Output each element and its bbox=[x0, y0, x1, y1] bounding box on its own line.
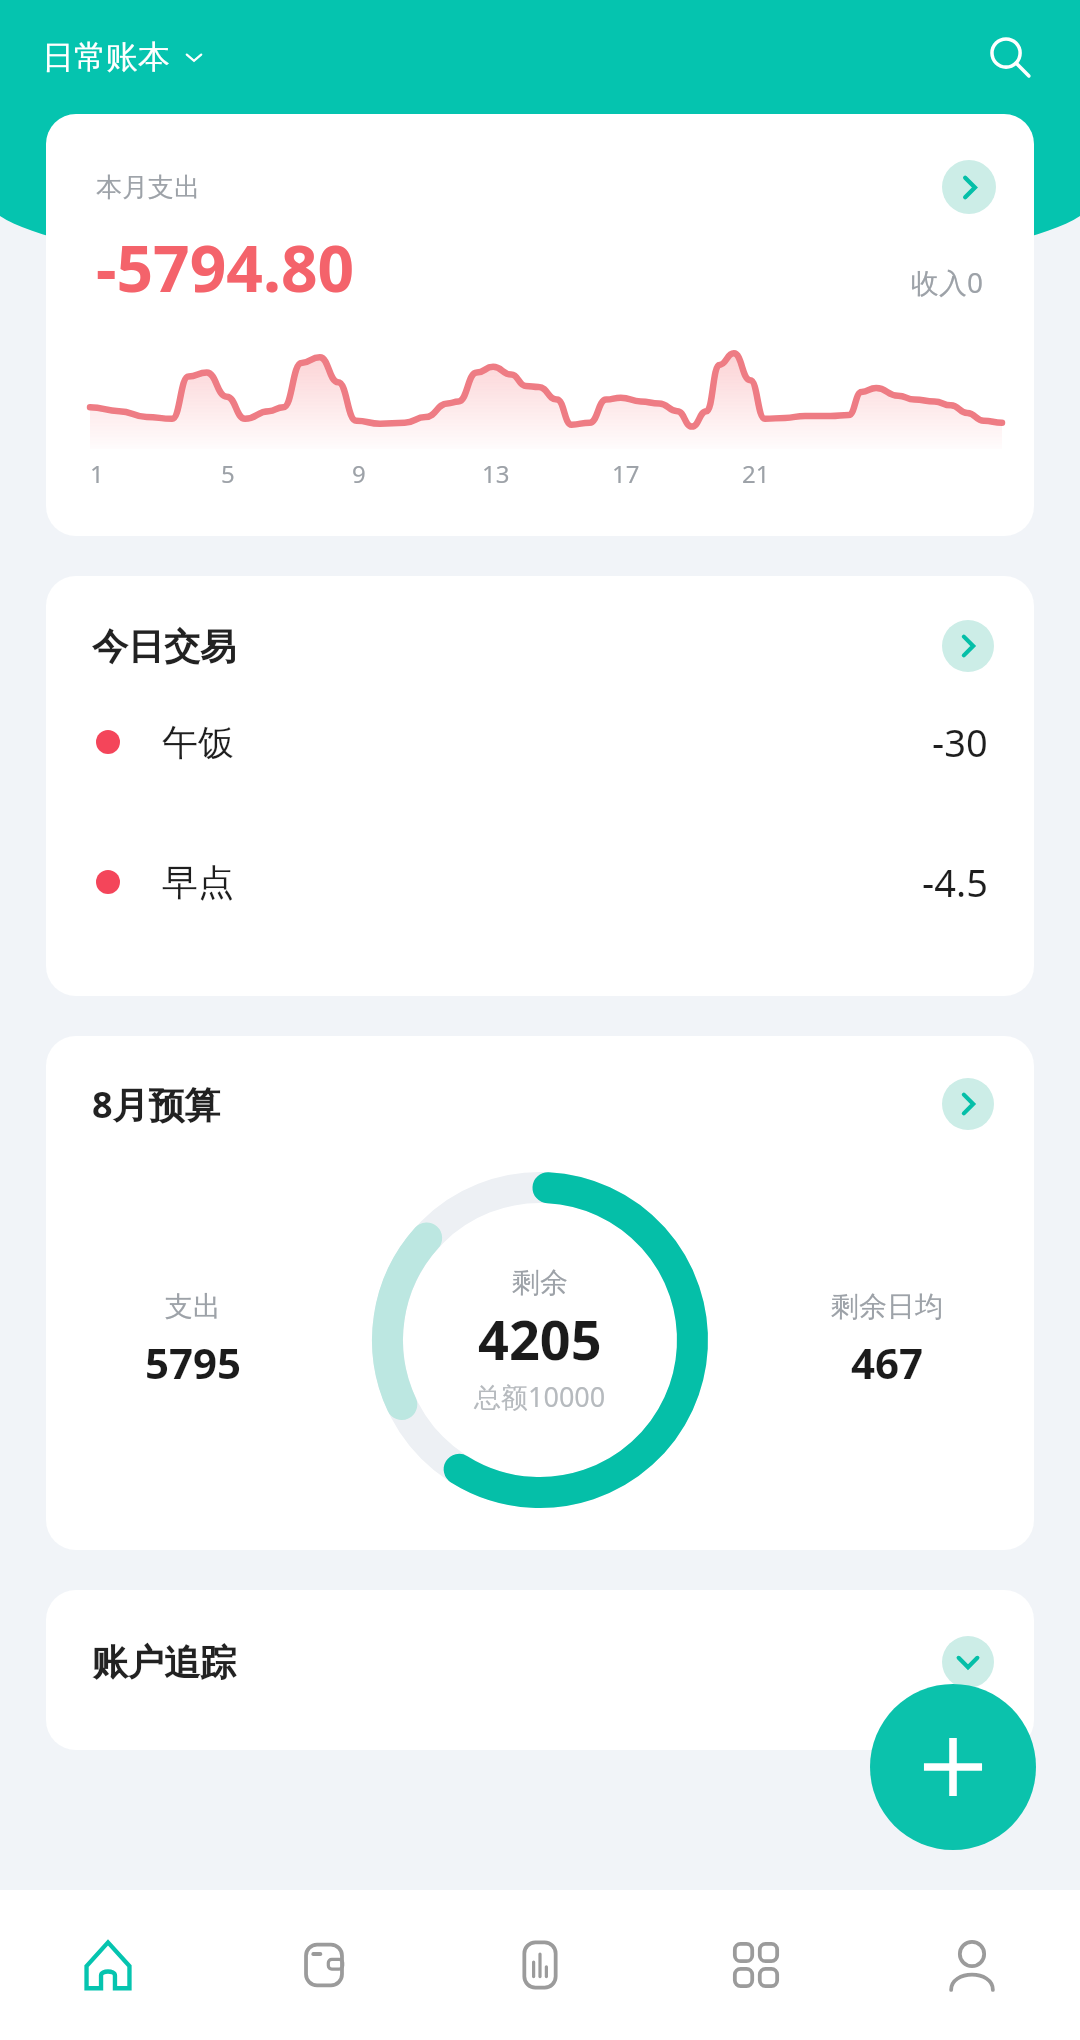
staticText: -5794.80 bbox=[96, 224, 355, 311]
staticText: 账户追踪 bbox=[92, 1640, 236, 1685]
button[interactable]: Statistics bbox=[432, 1890, 648, 2040]
button[interactable]: 日常账本 bbox=[34, 29, 214, 85]
button[interactable]: Profile bbox=[864, 1890, 1080, 2040]
staticText: 日常账本 bbox=[42, 37, 170, 77]
button[interactable]: Monthly expense detail bbox=[942, 160, 996, 214]
button[interactable]: 今日交易 bbox=[46, 576, 1034, 996]
staticText: 9 bbox=[352, 457, 366, 490]
staticText: -4.5 bbox=[922, 856, 988, 908]
staticText: 5 bbox=[221, 457, 235, 490]
staticText: 支出 bbox=[165, 1289, 221, 1324]
button[interactable]: Search bbox=[974, 21, 1046, 93]
button[interactable]: 早点 bbox=[46, 812, 1034, 952]
button[interactable]: 8月预算 bbox=[46, 1036, 1034, 1550]
staticText: 剩余 bbox=[512, 1265, 568, 1300]
button[interactable]: 账户追踪 bbox=[46, 1590, 1034, 1750]
button[interactable]: Account tracking bbox=[942, 1636, 994, 1688]
button[interactable]: 本月支出 bbox=[46, 114, 1034, 536]
staticText: -30 bbox=[932, 716, 988, 768]
button[interactable]: Categories bbox=[648, 1890, 864, 2040]
staticText: 收入0 bbox=[911, 263, 984, 301]
staticText: 8月预算 bbox=[92, 1080, 221, 1129]
staticText: 4205 bbox=[478, 1302, 602, 1376]
button[interactable]: Budget detail bbox=[942, 1078, 994, 1130]
staticText: 早点 bbox=[162, 860, 234, 905]
staticText: 午饭 bbox=[162, 720, 234, 765]
button[interactable]: Add record bbox=[870, 1684, 1036, 1850]
button[interactable]: Home bbox=[0, 1890, 216, 2040]
staticText: 本月支出 bbox=[96, 171, 200, 204]
staticText: 467 bbox=[851, 1334, 924, 1391]
button[interactable]: Today transactions bbox=[942, 620, 994, 672]
staticText: 21 bbox=[742, 457, 770, 490]
staticText: 今日交易 bbox=[92, 624, 236, 669]
staticText: 总额10000 bbox=[474, 1378, 606, 1415]
button[interactable]: Wallet bbox=[216, 1890, 432, 2040]
staticText: 13 bbox=[482, 457, 510, 490]
staticText: 17 bbox=[612, 457, 640, 490]
staticText: 1 bbox=[90, 457, 104, 490]
staticText: 5795 bbox=[145, 1334, 242, 1391]
staticText: 剩余日均 bbox=[831, 1289, 943, 1324]
button[interactable]: 午饭 bbox=[46, 672, 1034, 812]
